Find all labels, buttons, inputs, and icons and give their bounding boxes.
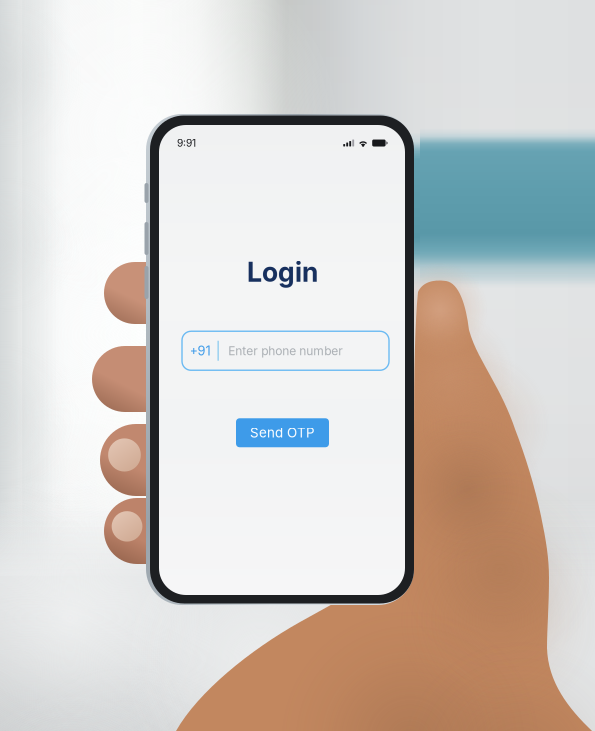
button[interactable]: Send OTP <box>235 418 328 447</box>
staticText: 9:91 <box>177 137 196 149</box>
staticText: +91 <box>189 343 210 358</box>
staticText: Enter phone number <box>228 343 343 358</box>
staticText: Send OTP <box>250 425 315 441</box>
staticText: Login <box>247 256 318 288</box>
